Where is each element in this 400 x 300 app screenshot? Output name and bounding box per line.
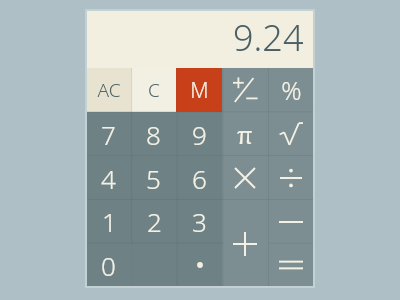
staticText: 9	[192, 117, 207, 152]
staticText: 4	[101, 161, 116, 196]
staticText: 7	[101, 117, 116, 152]
button[interactable]: Divide	[268, 156, 314, 200]
button[interactable]: Multiply	[222, 156, 268, 200]
button[interactable]: 5	[131, 156, 176, 200]
staticText: 2	[147, 204, 162, 239]
button[interactable]: M	[176, 68, 222, 112]
button[interactable]: 9	[176, 112, 222, 156]
staticText: 0	[101, 248, 116, 283]
staticText: π	[237, 118, 253, 151]
staticText: M	[190, 76, 209, 105]
staticText: 9.24	[233, 13, 304, 62]
button[interactable]: C	[131, 68, 176, 112]
button[interactable]: Minus	[268, 200, 314, 243]
button[interactable]: 8	[131, 112, 176, 156]
staticText: 3	[192, 204, 207, 239]
staticText: AC	[97, 77, 121, 103]
button[interactable]: Plus	[222, 200, 268, 287]
button[interactable]: π	[222, 112, 268, 156]
button[interactable]: AC	[86, 68, 131, 112]
staticText: 5	[146, 161, 161, 196]
button[interactable]: Decimal point	[177, 243, 222, 287]
button[interactable]: Square root	[268, 112, 314, 156]
button[interactable]: 2	[132, 200, 177, 243]
staticText: C	[148, 77, 160, 103]
button[interactable]: 1	[86, 200, 132, 243]
staticText: %	[281, 73, 302, 107]
button[interactable]: %	[268, 68, 314, 112]
button[interactable]: Equals	[268, 243, 314, 287]
button[interactable]: 0	[86, 243, 177, 287]
button[interactable]: 6	[176, 156, 222, 200]
button[interactable]: 4	[86, 156, 131, 200]
button[interactable]: 3	[177, 200, 222, 243]
staticText: 1	[102, 204, 117, 239]
staticText: 6	[192, 161, 207, 196]
button[interactable]: 7	[86, 112, 131, 156]
staticText: 8	[146, 117, 161, 152]
button[interactable]: Plus minus	[222, 68, 268, 112]
